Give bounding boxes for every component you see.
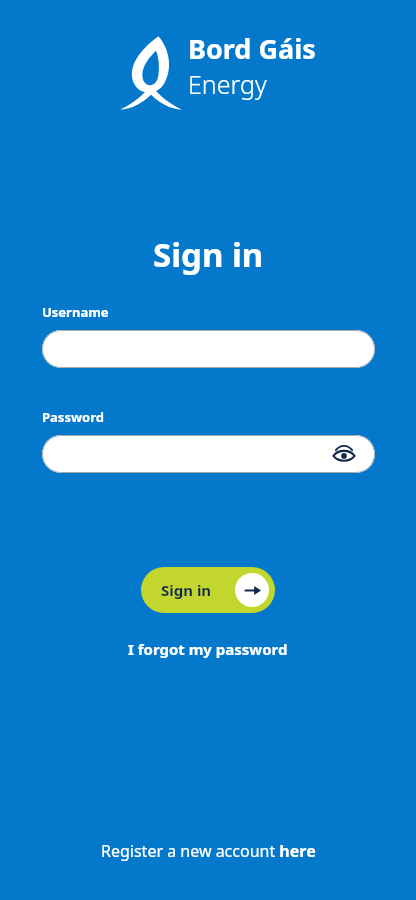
staticText: Sign in [153,232,264,277]
staticText: Password [42,408,104,426]
staticText: I forgot my password [128,639,288,659]
staticText: Username [42,303,109,321]
staticText: Sign in [161,580,212,600]
staticText: Energy [188,67,267,101]
staticText: Bord Gáis [188,30,316,67]
button[interactable]: Username field [42,330,375,368]
button[interactable]: Show password [42,435,375,473]
staticText: Register a new account here [101,840,316,862]
button[interactable]: Register a new account here [89,834,328,868]
button[interactable]: I forgot my password [116,633,300,665]
button[interactable]: Sign in [141,567,275,613]
button[interactable]: Show password [329,439,359,469]
other: Bord Gáis Energy [120,30,316,113]
